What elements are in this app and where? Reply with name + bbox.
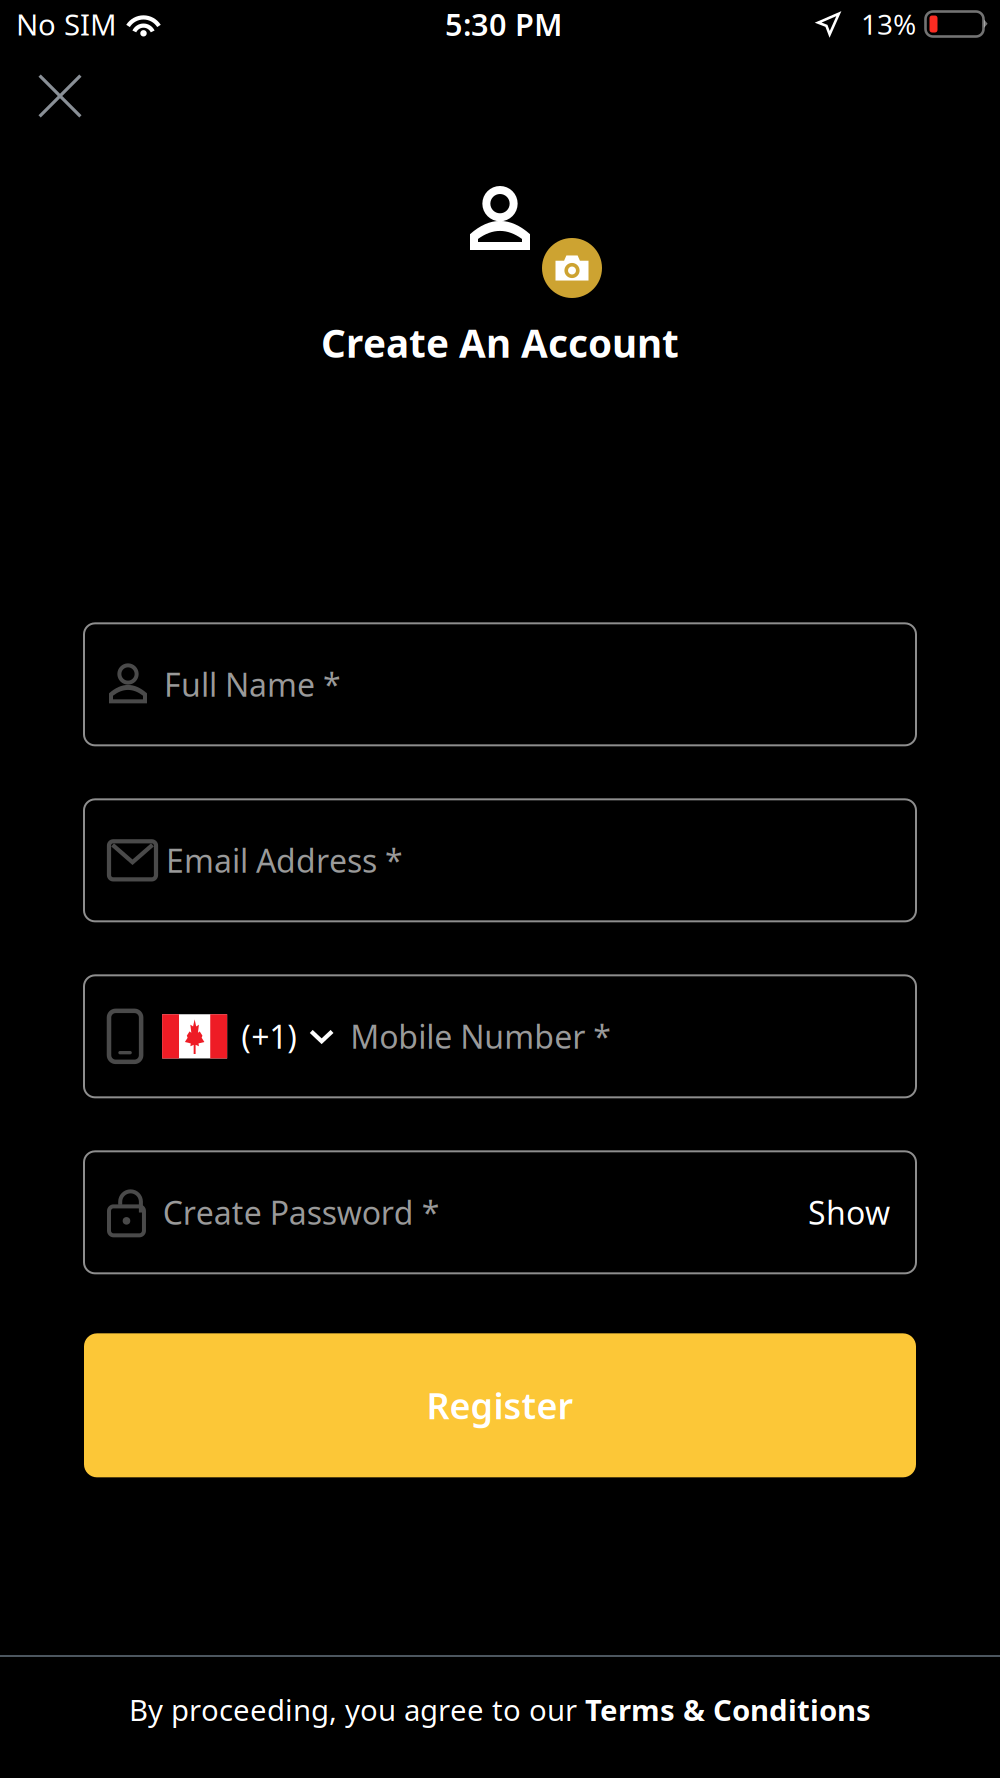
staticText: Show [808,1191,890,1234]
staticText: Full Name * [164,663,341,706]
staticText: Email Address * [166,839,403,882]
staticText: Terms & Conditions [585,1690,871,1729]
button[interactable]: By proceeding, you agree to our [0,1657,1000,1778]
staticText: 5:30 PM [445,4,562,44]
button[interactable]: (+1) [84,975,916,1097]
staticText: By proceeding, you agree to our [129,1690,585,1729]
staticText: Register [426,1381,573,1429]
staticText: 13% [861,5,916,43]
staticText: Create An Account [321,317,679,368]
staticText: No SIM [16,4,117,43]
button[interactable]: Email Address * [84,799,916,921]
staticText: Mobile Number * [350,1015,611,1058]
button[interactable]: Full Name * [84,623,916,745]
staticText: Create Password * [163,1191,440,1234]
button[interactable]: Create Password * [84,1151,916,1273]
staticText: (+1) [241,1015,297,1058]
button[interactable]: Close [27,63,93,129]
button[interactable]: Register [84,1333,916,1477]
